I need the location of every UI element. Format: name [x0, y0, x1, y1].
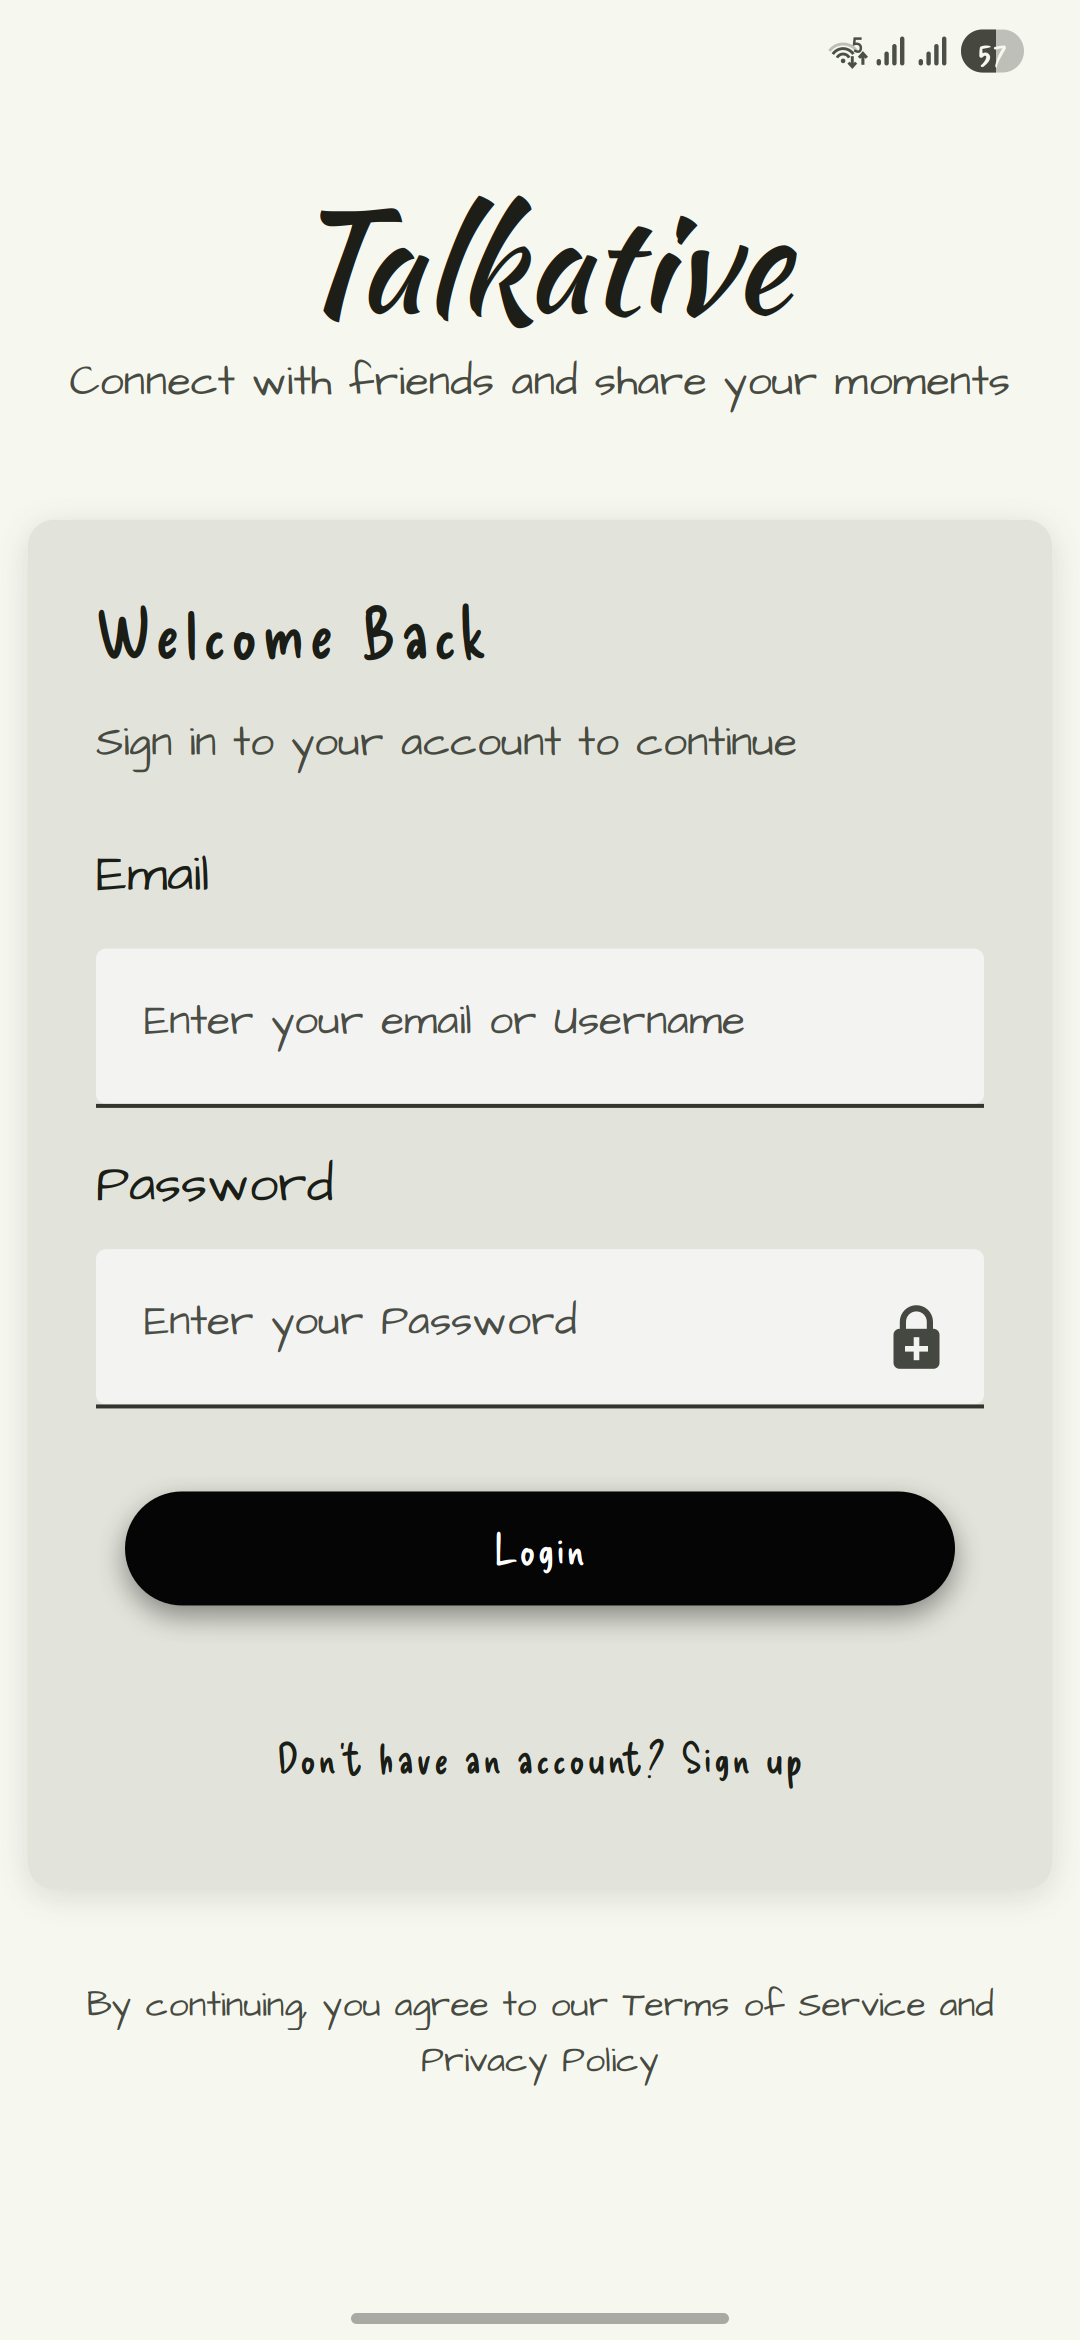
- staticText: Privacy Policy: [421, 2035, 659, 2085]
- staticText: Enter your Password: [144, 1292, 577, 1351]
- staticText: 57: [978, 26, 1007, 76]
- staticText: Welcome Back: [96, 590, 487, 673]
- staticText: Enter your email or Username: [144, 992, 745, 1051]
- button[interactable]: Don't have an account? Sign up: [96, 1732, 984, 1782]
- staticText: Connect with friends and share your mome…: [69, 352, 1010, 412]
- staticText: Password: [96, 1149, 334, 1221]
- button[interactable]: Login: [125, 1491, 955, 1605]
- staticText: Don't have an account? Sign up: [278, 1732, 802, 1782]
- staticText: Login: [495, 1523, 585, 1574]
- staticText: Talkative: [290, 159, 790, 362]
- staticText: Email: [96, 838, 209, 911]
- staticText: By continuing, you agree to our Terms of…: [86, 1980, 993, 2029]
- staticText: Sign in to your account to continue: [96, 713, 797, 772]
